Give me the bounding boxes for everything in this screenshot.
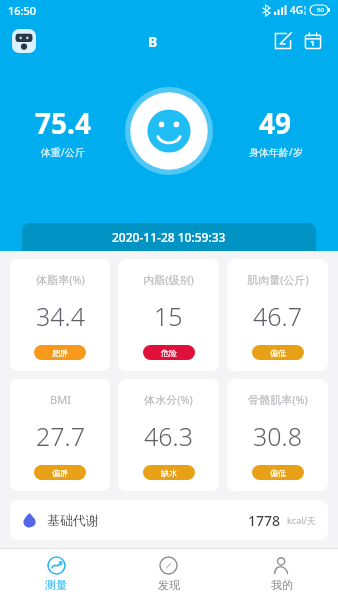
button[interactable]: 内脂(级别) (118, 259, 219, 371)
staticText: 46.7 (253, 299, 302, 333)
button[interactable]: 肌肉量(公斤) (227, 259, 328, 371)
staticText: 46.3 (144, 419, 193, 453)
button[interactable]: 发现 (112, 548, 225, 600)
staticText: 身体年龄/岁 (249, 145, 303, 159)
staticText: BMI (50, 392, 71, 407)
staticText: 偏胖 (52, 468, 68, 478)
staticText: 27.7 (36, 419, 85, 453)
staticText: 30.8 (253, 419, 302, 453)
staticText: 体水分(%) (144, 392, 193, 407)
button[interactable]: 2020-11-28 10:59:33 (22, 223, 316, 251)
staticText: 偏低 (270, 468, 286, 478)
staticText: 34.4 (36, 299, 85, 333)
staticText: 体重/公斤 (41, 145, 85, 159)
staticText: B (148, 32, 158, 51)
button[interactable]: 体水分(%) (118, 379, 219, 491)
button[interactable]: 测量 (0, 548, 112, 600)
staticText: 发现 (158, 578, 180, 592)
button[interactable]: Calendar (300, 28, 326, 54)
staticText: 4G (290, 3, 303, 17)
button[interactable]: Device (12, 29, 36, 53)
staticText: kcal/天 (287, 514, 316, 526)
button[interactable]: 我的 (225, 548, 338, 600)
staticText: 内脂(级别) (143, 272, 194, 287)
button[interactable]: 体脂率(%) (10, 259, 110, 371)
staticText: 49 (259, 104, 292, 142)
staticText: 2020-11-28 10:59:33 (112, 229, 226, 245)
staticText: 16:50 (8, 3, 37, 18)
staticText: 15 (154, 299, 183, 333)
staticText: 偏低 (270, 348, 286, 358)
staticText: 缺水 (161, 468, 177, 478)
staticText: 60 (317, 6, 324, 14)
button[interactable]: 基础代谢 (10, 500, 328, 540)
staticText: 肌肉量(公斤) (247, 272, 309, 287)
staticText: 我的 (271, 578, 293, 592)
staticText: 测量 (45, 578, 67, 592)
staticText: 体脂率(%) (36, 272, 85, 287)
staticText: 肥胖 (52, 348, 68, 358)
staticText: 75.4 (35, 104, 91, 142)
staticText: 1778 (248, 511, 281, 530)
staticText: 基础代谢 (47, 512, 99, 528)
staticText: 危险 (161, 348, 177, 358)
staticText: 骨骼肌率(%) (248, 392, 308, 407)
button[interactable]: 骨骼肌率(%) (227, 379, 328, 491)
button[interactable]: Edit (270, 28, 296, 54)
button[interactable]: BMI (10, 379, 110, 491)
